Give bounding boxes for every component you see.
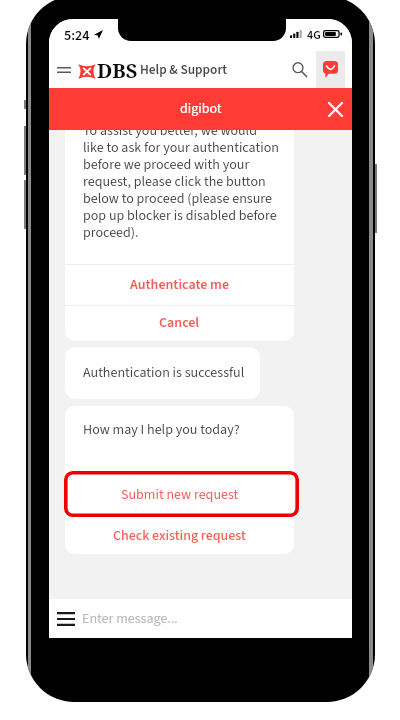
- staticText: Enter message...: [82, 609, 178, 629]
- button[interactable]: Authenticate me: [65, 264, 294, 305]
- button[interactable]: Chat with digibot: [316, 51, 345, 88]
- button[interactable]: Menu: [50, 51, 78, 88]
- staticText: How may I help you today?: [83, 420, 240, 440]
- button[interactable]: Cancel: [65, 305, 294, 341]
- staticText: To assist you better, we would like to a…: [83, 121, 280, 243]
- staticText: Authenticate me: [130, 275, 230, 295]
- staticText: DBS: [97, 57, 138, 84]
- button[interactable]: Search: [285, 51, 313, 88]
- button[interactable]: Check existing request: [65, 520, 294, 552]
- button[interactable]: Close: [322, 88, 348, 130]
- staticText: Check existing request: [113, 526, 246, 546]
- staticText: Help & Support: [140, 60, 228, 79]
- staticText: digibot: [180, 99, 222, 119]
- staticText: 5:24: [64, 26, 90, 46]
- button[interactable]: Menu: [52, 599, 80, 638]
- staticText: Submit new request: [121, 485, 239, 505]
- staticText: Cancel: [159, 313, 200, 333]
- staticText: 4G: [307, 27, 321, 44]
- button[interactable]: Submit new request: [65, 473, 294, 517]
- staticText: Authentication is successful: [83, 363, 245, 383]
